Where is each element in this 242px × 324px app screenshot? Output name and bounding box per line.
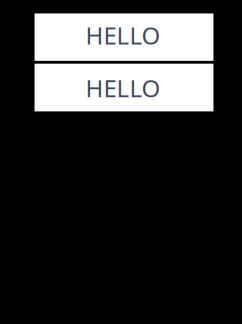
button[interactable]: HELLO	[34, 13, 213, 61]
staticText: HELLO	[85, 19, 160, 51]
staticText: HELLO	[85, 72, 160, 104]
button[interactable]: HELLO	[34, 64, 213, 111]
